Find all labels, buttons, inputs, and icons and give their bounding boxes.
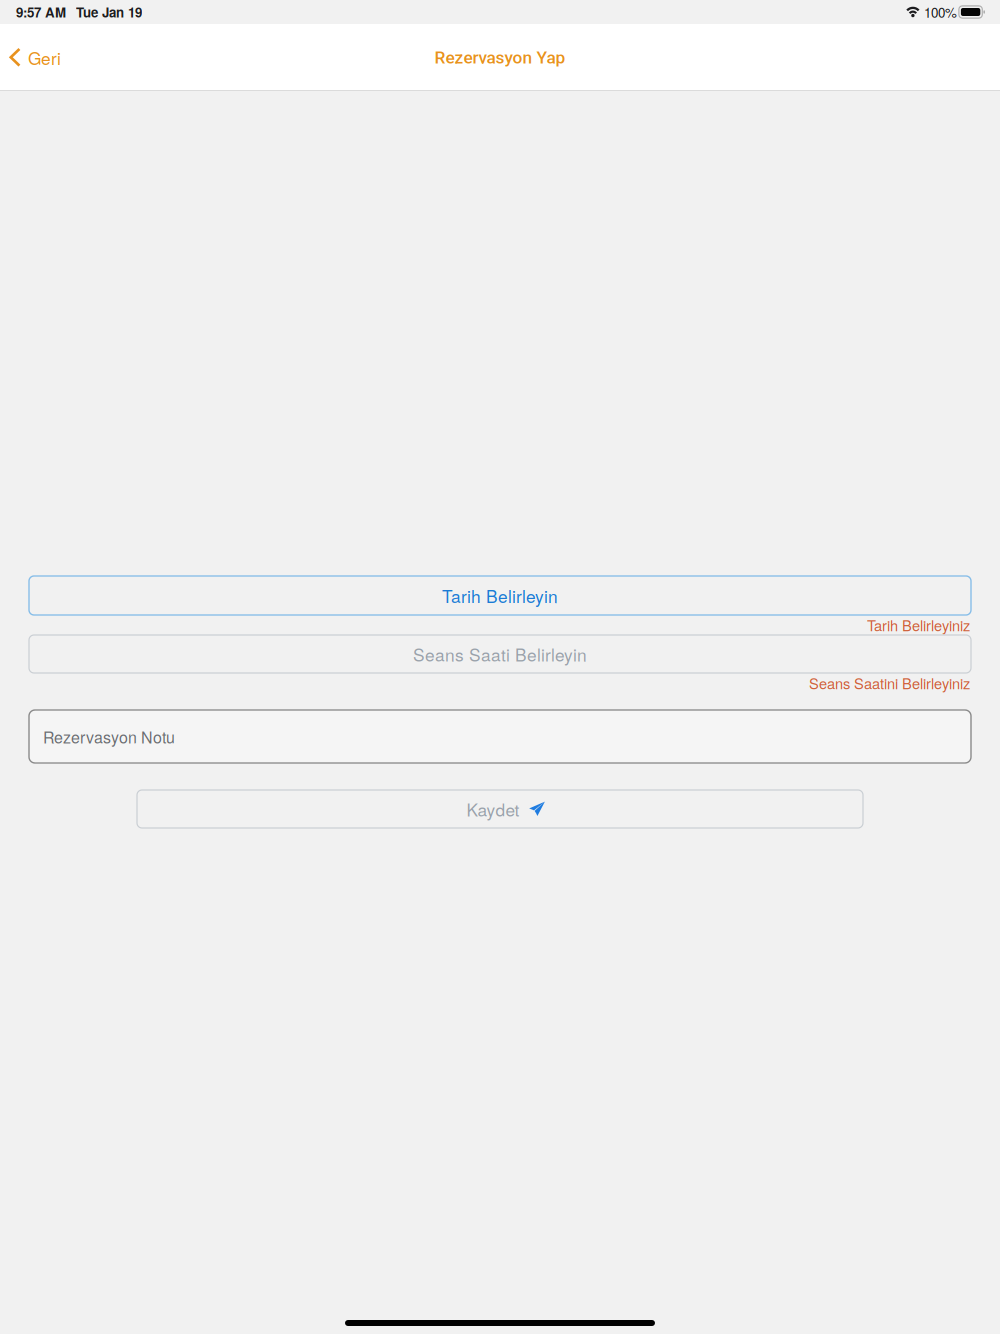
staticText: Rezervasyon Notu [43,725,175,748]
button[interactable]: Kaydet [137,790,863,828]
button[interactable]: Rezervasyon Notu [29,710,971,763]
staticText: Seans Saatini Belirleyiniz [809,672,970,693]
staticText: Rezervasyon Yap [434,47,565,68]
staticText: Tarih Belirleyiniz [867,614,970,635]
button[interactable]: Seans Saati Belirleyin [29,635,971,673]
staticText: Tarih Belirleyin [442,583,558,608]
staticText: 100% [924,2,957,22]
button[interactable]: Tarih Belirleyin [29,576,971,615]
staticText: 9:57 AM [16,2,66,22]
staticText: Tue Jan 19 [76,2,142,22]
staticText: Seans Saati Belirleyin [413,642,587,666]
staticText: Kaydet [466,797,519,821]
button[interactable]: Geri [0,35,73,80]
staticText: Geri [28,45,61,70]
